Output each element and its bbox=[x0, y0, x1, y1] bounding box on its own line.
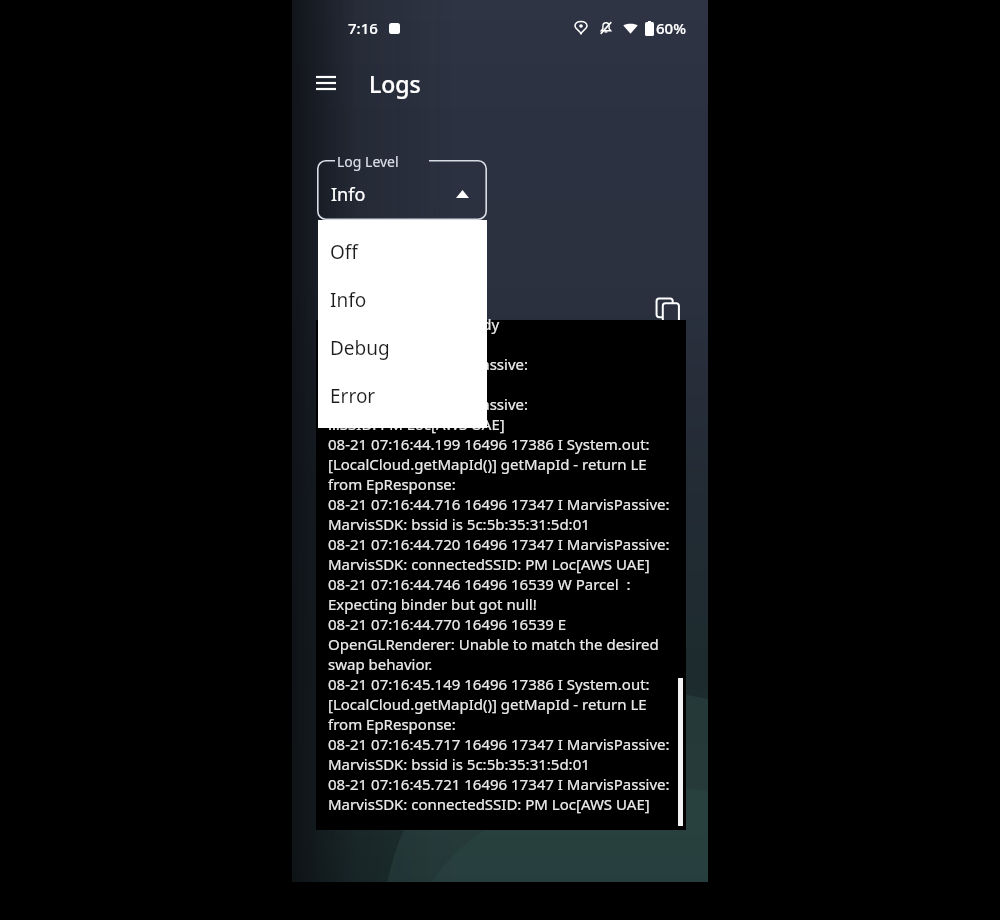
button[interactable]: Open navigation menu bbox=[305, 62, 347, 104]
staticText: OpenGLRenderer: Unable to match the desi… bbox=[328, 634, 659, 654]
staticText: [LocalCloud.getMapId()] getMapId - retur… bbox=[328, 694, 678, 714]
staticText: MarvisSDK: bssid is 5c:5b:35:31:5d:01 bbox=[328, 754, 590, 774]
staticText: …nt receiver has already bbox=[328, 314, 500, 334]
staticText: 08-21 07:16:45.149 16496 17386 I System.… bbox=[328, 674, 650, 694]
staticText: Info bbox=[330, 287, 367, 313]
button[interactable]: Debug bbox=[318, 324, 487, 372]
staticText: Expecting binder but got null! bbox=[328, 594, 537, 614]
staticText: …496 17347 I MarvisPassive: bbox=[328, 354, 529, 374]
staticText: …SSID: PM Loc[AWS UAE] bbox=[328, 414, 505, 434]
staticText: Debug bbox=[330, 335, 390, 361]
staticText: 08-21 07:16:44.199 16496 17386 I System.… bbox=[328, 434, 650, 454]
staticText: 60% bbox=[656, 18, 686, 38]
staticText: 08-21 07:16:45.717 16496 17347 I MarvisP… bbox=[328, 734, 670, 754]
staticText: Off bbox=[330, 239, 358, 265]
button[interactable]: Copy logs bbox=[648, 290, 688, 330]
staticText: 7:16 bbox=[348, 18, 378, 38]
staticText: [LocalCloud.getMapId()] getMapId - retur… bbox=[328, 454, 678, 474]
staticText: MarvisSDK: connectedSSID: PM Loc[AWS UAE… bbox=[328, 554, 650, 574]
button[interactable]: Off bbox=[318, 228, 487, 276]
staticText: …496 17347 I MarvisPassive: bbox=[328, 394, 529, 414]
staticText: 08-21 07:16:44.770 16496 16539 E bbox=[328, 614, 567, 634]
button[interactable]: Error bbox=[318, 372, 487, 420]
staticText: from EpResponse: bbox=[328, 714, 456, 734]
staticText: swap behavior. bbox=[328, 654, 433, 674]
staticText: 08-21 07:16:45.721 16496 17347 I MarvisP… bbox=[328, 774, 670, 794]
button[interactable]: Info bbox=[318, 276, 487, 324]
staticText: MarvisSDK: bssid is 5c:5b:35:31:5d:01 bbox=[328, 514, 590, 534]
staticText: Error bbox=[330, 383, 376, 409]
staticText: 08-21 07:16:44.716 16496 17347 I MarvisP… bbox=[328, 494, 670, 514]
staticText: MarvisSDK: connectedSSID: PM Loc[AWS UAE… bbox=[328, 794, 650, 814]
staticText: Log Level bbox=[337, 152, 399, 171]
staticText: …5b:35:31:5d:01 bbox=[328, 374, 444, 394]
staticText: Logs bbox=[369, 68, 421, 99]
staticText: 08-21 07:16:44.720 16496 17347 I MarvisP… bbox=[328, 534, 670, 554]
staticText: from EpResponse: bbox=[328, 474, 456, 494]
staticText: 08-21 07:16:44.746 16496 16539 W Parcel … bbox=[328, 574, 631, 594]
staticText: Info bbox=[331, 182, 366, 207]
button[interactable]: Log Level bbox=[317, 160, 487, 220]
